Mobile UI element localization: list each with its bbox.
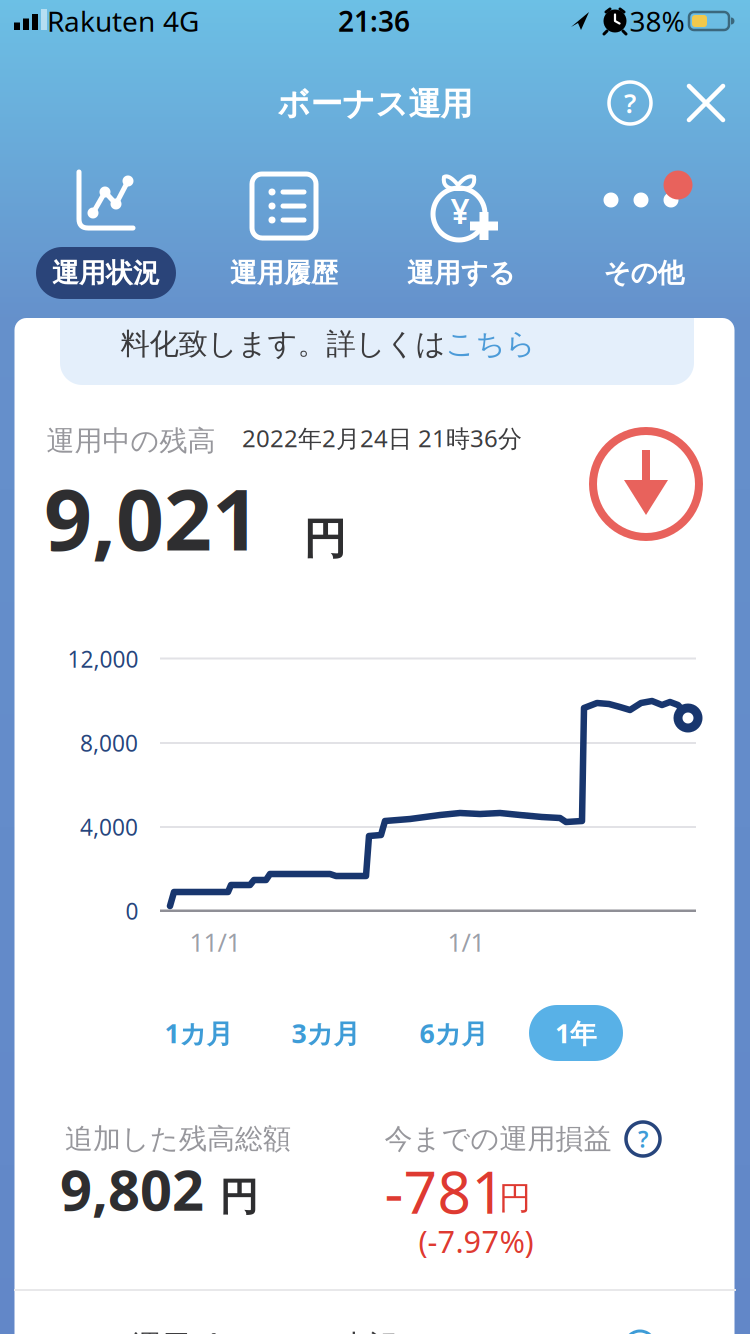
staticText: 8,000 xyxy=(80,728,138,758)
staticText: ¥ xyxy=(450,189,469,233)
staticText: 12,000 xyxy=(67,644,138,674)
staticText: 6カ月 xyxy=(419,1015,488,1051)
button[interactable]: 運用状況 xyxy=(20,150,190,300)
staticText: 9,021 xyxy=(44,462,260,574)
staticText: 運用する xyxy=(407,257,515,289)
staticText: 1年 xyxy=(555,1015,597,1051)
staticText: 運用状況 xyxy=(52,257,160,289)
staticText: 今までの運用損益 xyxy=(384,1122,611,1156)
staticText: ? xyxy=(638,1124,648,1154)
button[interactable]: 3カ月 xyxy=(271,1005,381,1061)
staticText: 円 xyxy=(303,513,346,565)
button[interactable]: 閉じる xyxy=(678,75,734,131)
staticText: 1カ月 xyxy=(164,1015,233,1051)
staticText: ? xyxy=(624,85,636,121)
staticText: 21:36 xyxy=(338,2,410,40)
staticText: 円 xyxy=(499,1178,531,1218)
button[interactable]: こちら xyxy=(445,326,535,362)
staticText: -781 xyxy=(384,1152,505,1230)
staticText: 9,802 xyxy=(60,1152,204,1226)
staticText: 運用中の残高 xyxy=(46,424,215,458)
staticText: (-7.97%) xyxy=(418,1221,533,1261)
button[interactable]: その他 xyxy=(559,150,729,300)
staticText: 料化致します。詳しくは xyxy=(120,326,445,362)
staticText: その他 xyxy=(603,257,684,289)
button[interactable]: 6カ月 xyxy=(399,1005,509,1061)
staticText: 0 xyxy=(125,896,138,926)
staticText: Rakuten xyxy=(47,2,155,40)
button[interactable]: 1カ月 xyxy=(144,1005,254,1061)
button[interactable]: 運用損益について xyxy=(621,1117,665,1161)
button[interactable]: ヘルプ xyxy=(602,75,658,131)
staticText: 追加した残高総額 xyxy=(65,1122,291,1156)
staticText: こちら xyxy=(445,326,535,362)
staticText: 2022年2月24日 21時36分 xyxy=(242,422,522,454)
staticText: 4,000 xyxy=(80,812,138,842)
staticText: 38% xyxy=(629,2,684,40)
staticText: 4G xyxy=(163,2,199,40)
button[interactable]: ¥ xyxy=(376,150,546,300)
button[interactable]: 運用履歴 xyxy=(199,150,369,300)
staticText: ボーナス運用 xyxy=(277,84,472,124)
staticText: 運用ポイントの内訳 xyxy=(132,1328,398,1334)
staticText: 運用履歴 xyxy=(230,257,338,289)
staticText: 3カ月 xyxy=(291,1015,360,1051)
staticText: 1/1 xyxy=(447,925,484,959)
staticText: 11/1 xyxy=(189,925,240,959)
button[interactable]: 引き出す xyxy=(588,426,704,542)
staticText: 円 xyxy=(219,1173,258,1221)
button[interactable]: 1年 xyxy=(529,1005,623,1061)
